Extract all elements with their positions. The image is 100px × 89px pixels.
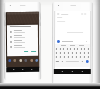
button[interactable]: [10, 44, 36, 49]
button[interactable]: [57, 39, 88, 44]
button[interactable]: [10, 29, 36, 34]
button[interactable]: Home: [71, 70, 74, 73]
button[interactable]: Symbols: [56, 61, 59, 62]
button[interactable]: Back: [61, 70, 64, 73]
button[interactable]: Send: [86, 60, 89, 63]
button[interactable]: [10, 39, 36, 44]
button[interactable]: [30, 50, 36, 53]
button[interactable]: [23, 50, 28, 53]
button[interactable]: [10, 34, 36, 39]
button[interactable]: Recent apps: [81, 70, 84, 73]
button[interactable]: Home: [21, 68, 24, 71]
button[interactable]: Back: [12, 68, 15, 71]
button[interactable]: Recent apps: [30, 68, 33, 71]
